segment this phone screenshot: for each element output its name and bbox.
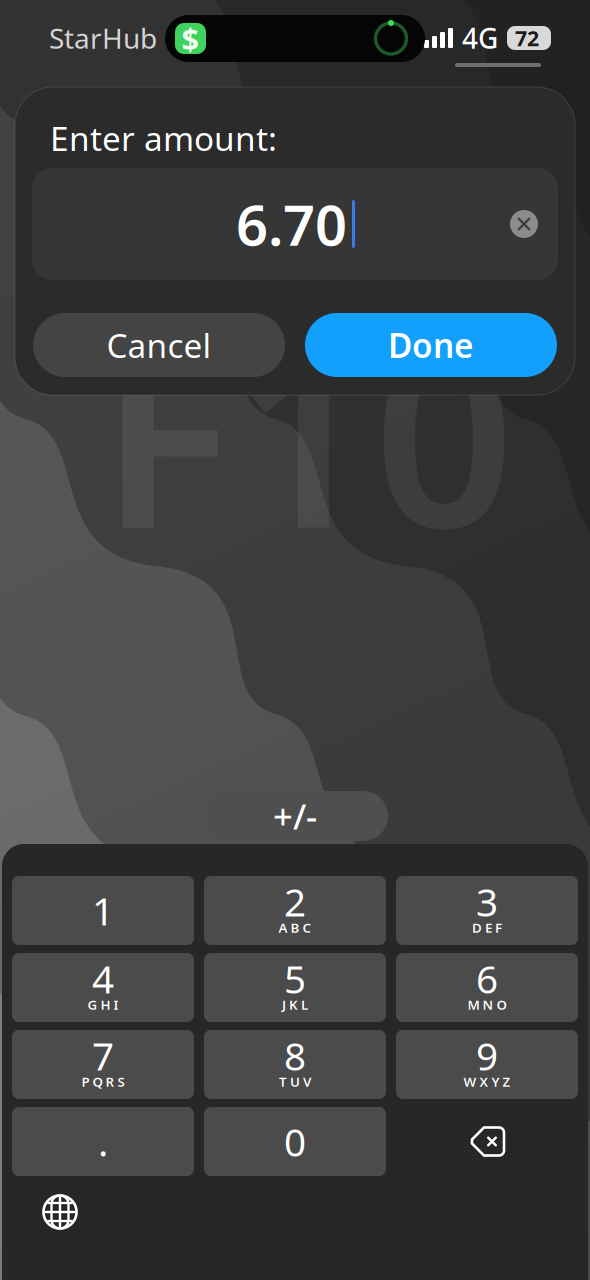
button[interactable]: Done bbox=[305, 313, 557, 377]
staticText: Cancel bbox=[106, 323, 211, 367]
staticText: 6 bbox=[476, 953, 498, 1004]
staticText: G H I bbox=[87, 996, 118, 1013]
button[interactable]: 0 bbox=[204, 1107, 386, 1176]
button[interactable]: 6 bbox=[396, 953, 578, 1022]
staticText: 7 bbox=[92, 1030, 114, 1081]
button[interactable]: 9 bbox=[396, 1030, 578, 1099]
button[interactable]: . bbox=[12, 1107, 194, 1176]
staticText: 4G bbox=[462, 19, 498, 57]
staticText: 1 bbox=[92, 885, 114, 936]
staticText: 2 bbox=[284, 876, 306, 927]
button[interactable]: 8 bbox=[204, 1030, 386, 1099]
staticText: StarHub bbox=[49, 19, 157, 57]
button[interactable]: 2 bbox=[204, 876, 386, 945]
staticText: Enter amount: bbox=[50, 116, 277, 160]
staticText: 8 bbox=[284, 1030, 306, 1081]
button[interactable]: 4 bbox=[12, 953, 194, 1022]
staticText: 5 bbox=[284, 953, 306, 1004]
button[interactable]: +/- bbox=[202, 791, 388, 841]
staticText: +/- bbox=[273, 793, 317, 839]
staticText: 6.70 bbox=[236, 187, 347, 261]
staticText: . bbox=[98, 1116, 108, 1167]
button[interactable]: Clear text bbox=[502, 202, 546, 246]
staticText: 4 bbox=[92, 953, 114, 1004]
staticText: J K L bbox=[282, 996, 308, 1013]
staticText: 9 bbox=[476, 1030, 498, 1081]
staticText: 3 bbox=[476, 876, 498, 927]
staticText: Done bbox=[388, 323, 474, 367]
staticText: F10 bbox=[99, 268, 514, 596]
staticText: M N O bbox=[467, 996, 506, 1013]
staticText: 0 bbox=[284, 1116, 306, 1167]
button[interactable]: 7 bbox=[12, 1030, 194, 1099]
staticText: $ bbox=[181, 18, 199, 59]
button[interactable]: 5 bbox=[204, 953, 386, 1022]
button[interactable]: Next keyboard bbox=[32, 1184, 88, 1240]
staticText: A B C bbox=[278, 919, 311, 936]
button[interactable]: Delete bbox=[396, 1107, 578, 1176]
staticText: D E F bbox=[472, 919, 502, 936]
button[interactable]: Cancel bbox=[33, 313, 285, 377]
button[interactable]: 1 bbox=[12, 876, 194, 945]
staticText: T U V bbox=[279, 1073, 311, 1090]
staticText: P Q R S bbox=[81, 1073, 124, 1090]
staticText: 72 bbox=[515, 24, 539, 52]
button[interactable]: 3 bbox=[396, 876, 578, 945]
staticText: W X Y Z bbox=[463, 1073, 510, 1090]
